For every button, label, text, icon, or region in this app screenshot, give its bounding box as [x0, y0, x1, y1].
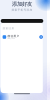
staticText: 搜索结果	[3, 27, 15, 30]
staticText: 搜索手机号添加	[11, 8, 32, 11]
button[interactable]: 微信用户	[1, 33, 43, 41]
button[interactable]: Search	[1, 19, 43, 23]
staticText: 添加好友	[12, 1, 32, 7]
staticText: wxid_8h2k	[7, 38, 15, 39]
staticText: 微信用户	[7, 34, 19, 38]
